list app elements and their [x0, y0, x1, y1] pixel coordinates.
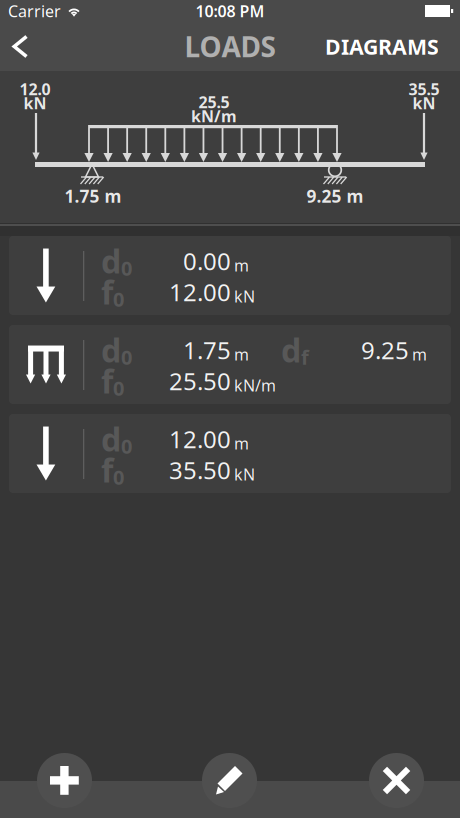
staticText: 0 [121, 255, 132, 281]
staticText: 9.25 [361, 334, 409, 366]
staticText: d [101, 329, 121, 371]
staticText: d [101, 418, 121, 460]
staticText: 1.75 m [64, 184, 121, 207]
staticText: 12.00 [169, 276, 231, 308]
staticText: d [281, 329, 301, 371]
button[interactable]: Edit load [202, 753, 257, 808]
staticText: 1.75 [183, 334, 231, 366]
button[interactable]: d [9, 325, 451, 404]
staticText: DIAGRAMS [325, 32, 439, 61]
staticText: kN/m [191, 105, 237, 127]
staticText: m [412, 344, 427, 365]
button[interactable]: Add load [37, 753, 92, 808]
button[interactable]: DIAGRAMS [289, 22, 460, 71]
staticText: m [234, 255, 249, 276]
staticText: 25.5 [198, 91, 229, 113]
staticText: 35.5 [408, 78, 439, 100]
staticText: 0 [113, 286, 124, 312]
staticText: kN [412, 92, 435, 114]
staticText: f [101, 449, 113, 491]
button[interactable]: Delete load [369, 753, 424, 808]
staticText: m [234, 433, 249, 454]
button[interactable]: d [9, 236, 451, 315]
button[interactable]: Back [0, 22, 52, 71]
staticText: 0 [113, 375, 124, 401]
staticText: kN [23, 92, 46, 114]
staticText: 12.00 [169, 423, 231, 455]
staticText: Carrier [8, 0, 61, 22]
staticText: kN/m [234, 375, 276, 396]
staticText: 0.00 [183, 245, 231, 277]
staticText: f [101, 271, 113, 313]
button[interactable]: d [9, 414, 451, 493]
staticText: kN [234, 286, 255, 307]
staticText: LOADS [184, 28, 275, 65]
staticText: 9.25 m [306, 184, 363, 207]
staticText: 0 [121, 344, 132, 370]
staticText: m [234, 344, 249, 365]
staticText: f [301, 344, 309, 370]
staticText: kN [234, 464, 255, 485]
staticText: 25.50 [169, 365, 231, 397]
staticText: d [101, 240, 121, 282]
staticText: 10:08 PM [195, 0, 264, 22]
staticText: 0 [113, 464, 124, 490]
staticText: f [101, 360, 113, 402]
staticText: 0 [121, 433, 132, 459]
staticText: 12.0 [19, 78, 50, 100]
staticText: 35.50 [169, 454, 231, 486]
